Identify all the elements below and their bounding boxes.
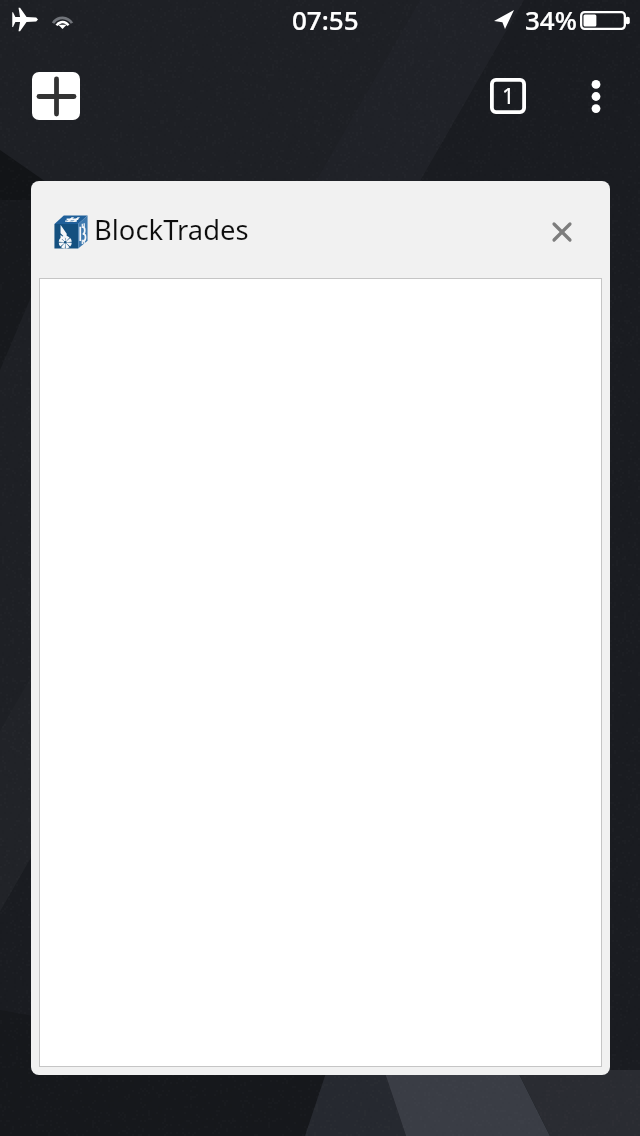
staticText: 34% — [525, 2, 577, 37]
button[interactable]: More options — [572, 72, 620, 120]
staticText: BlockTrades — [94, 211, 249, 248]
button[interactable]: Close — [534, 204, 590, 260]
button[interactable]: Tabs — [490, 78, 526, 114]
staticText: 07:55 — [292, 2, 359, 37]
staticText: 1 — [502, 80, 515, 110]
button[interactable]: New tab — [32, 72, 80, 120]
